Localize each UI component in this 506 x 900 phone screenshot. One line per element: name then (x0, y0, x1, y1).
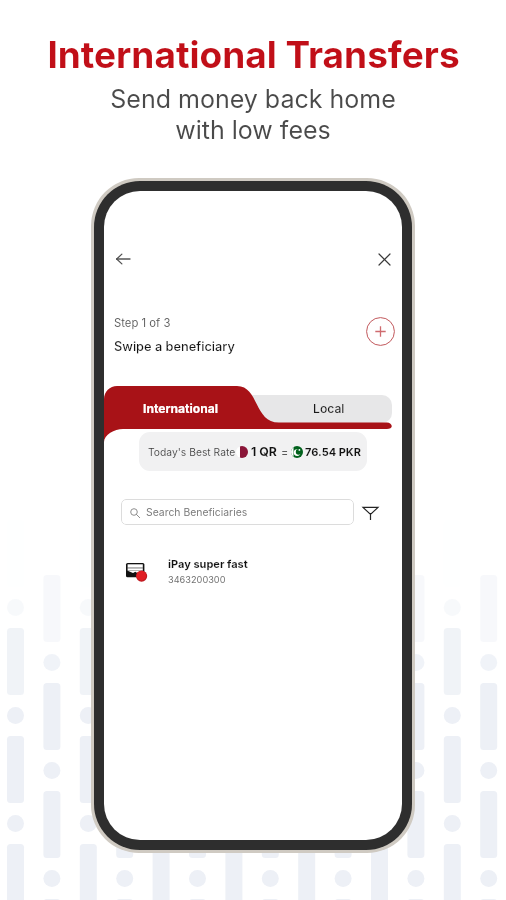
button[interactable]: Close (369, 244, 399, 274)
staticText: International (143, 401, 218, 416)
button[interactable]: iPay super fast (104, 557, 402, 601)
button[interactable] (239, 395, 392, 423)
staticText: 1 QR (251, 444, 277, 459)
staticText: Today's Best Rate (148, 446, 236, 458)
staticText: International Transfers (47, 32, 460, 77)
button[interactable]: Filter (357, 499, 383, 525)
staticText: 3463200300 (168, 574, 226, 585)
button[interactable]: Today's Best Rate (139, 432, 367, 471)
staticText: Local (313, 401, 345, 416)
staticText: = (281, 445, 289, 458)
staticText: Send money back home with low fees (110, 84, 396, 145)
staticText: Search Beneficiaries (146, 506, 248, 519)
staticText: Swipe a beneficiary (114, 339, 235, 354)
button[interactable]: Back (108, 244, 138, 274)
button[interactable]: Local (279, 392, 379, 425)
staticText: iPay super fast (168, 557, 248, 570)
button[interactable]: Search Beneficiaries (121, 499, 354, 525)
staticText: 76.54 PKR (305, 445, 361, 458)
button[interactable]: International (120, 392, 241, 425)
staticText: Step 1 of 3 (114, 316, 171, 330)
button[interactable]: Add beneficiary (365, 316, 395, 346)
